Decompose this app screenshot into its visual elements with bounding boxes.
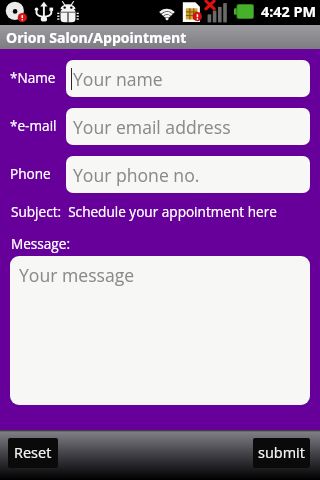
- other: SIM card alert: [181, 0, 203, 23]
- other: Wi-Fi: [156, 0, 178, 22]
- staticText: Your email address: [73, 115, 231, 139]
- button[interactable]: Reset: [8, 438, 58, 468]
- staticText: Phone: [10, 164, 51, 183]
- other: Storage alert: [5, 0, 27, 22]
- staticText: *e-mail: [10, 116, 57, 135]
- staticText: Reset: [14, 443, 52, 463]
- staticText: Message:: [11, 234, 70, 253]
- button[interactable]: Your message: [10, 256, 310, 405]
- button[interactable]: submit: [253, 438, 310, 468]
- staticText: Your name: [73, 67, 163, 91]
- staticText: Your phone no.: [73, 163, 200, 187]
- staticText: submit: [258, 443, 305, 463]
- staticText: 4:42 PM: [261, 2, 317, 22]
- button[interactable]: Your name: [66, 60, 310, 97]
- button[interactable]: Your phone no.: [66, 156, 310, 193]
- button[interactable]: Orion Salon/Appointment: [0, 25, 320, 49]
- button[interactable]: Subject: Schedule your appointment here: [11, 202, 277, 221]
- button[interactable]: Your email address: [66, 108, 310, 145]
- other: No signal: [202, 0, 228, 23]
- other: USB connected: [35, 0, 53, 22]
- other: Android debug: [57, 0, 79, 23]
- staticText: *Name: [10, 68, 56, 87]
- staticText: Your message: [19, 263, 135, 287]
- other: Battery full: [234, 4, 254, 19]
- staticText: Orion Salon/Appointment: [6, 28, 187, 47]
